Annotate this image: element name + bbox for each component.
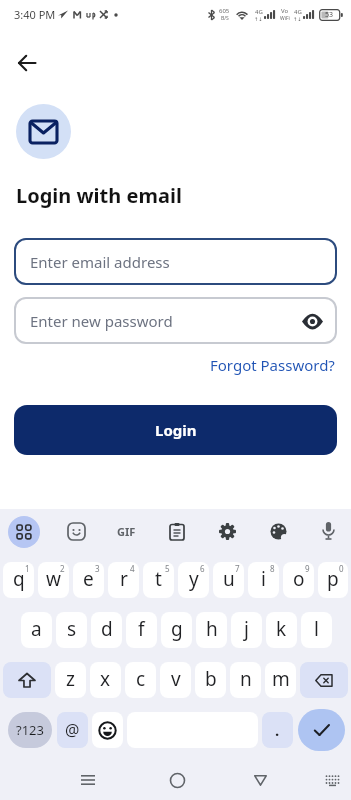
button[interactable] — [320, 768, 344, 792]
staticText: a — [31, 616, 42, 642]
button[interactable]: c — [125, 662, 156, 698]
staticText: f — [138, 616, 145, 642]
button[interactable] — [263, 516, 293, 546]
staticText: 9 — [305, 563, 310, 574]
staticText: d — [101, 616, 113, 642]
button[interactable]: g — [161, 612, 192, 648]
staticText: B/S — [221, 15, 229, 22]
button[interactable] — [248, 768, 272, 792]
button[interactable]: e — [73, 562, 104, 598]
staticText: 8 — [270, 563, 275, 574]
staticText: z — [66, 666, 75, 692]
staticText: 4 — [130, 563, 135, 574]
button[interactable]: t — [143, 562, 174, 598]
staticText: x — [100, 666, 111, 692]
staticText: o — [293, 566, 305, 592]
staticText: Login — [155, 420, 197, 440]
staticText: n — [240, 666, 252, 692]
button[interactable]: b — [195, 662, 226, 698]
button[interactable]: n — [230, 662, 261, 698]
button[interactable]: s — [56, 612, 87, 648]
staticText: u — [223, 566, 235, 592]
button[interactable]: y — [178, 562, 209, 598]
button[interactable]: u — [213, 562, 244, 598]
button[interactable] — [162, 516, 192, 546]
staticText: 6 — [200, 563, 205, 574]
staticText: h — [206, 616, 218, 642]
staticText: l — [314, 616, 319, 642]
button[interactable]: l — [301, 612, 332, 648]
staticText: Forgot Password? — [210, 355, 335, 375]
button[interactable]: d — [91, 612, 122, 648]
staticText: c — [136, 666, 146, 692]
button[interactable] — [3, 662, 51, 698]
staticText: 3 — [95, 563, 100, 574]
staticText: 4G — [255, 8, 263, 16]
button[interactable] — [212, 516, 242, 546]
button[interactable]: Enter new password — [14, 297, 337, 344]
button[interactable]: o — [283, 562, 314, 598]
button[interactable] — [298, 709, 345, 751]
button[interactable]: a — [21, 612, 52, 648]
button[interactable]: j — [231, 612, 262, 648]
button[interactable]: q — [3, 562, 34, 598]
button[interactable] — [313, 516, 343, 546]
staticText: Login with email — [16, 182, 182, 209]
button[interactable]: x — [90, 662, 121, 698]
button[interactable] — [300, 662, 348, 698]
button[interactable]: Login — [14, 405, 337, 455]
staticText: 1 — [25, 563, 30, 574]
button[interactable] — [92, 712, 123, 748]
staticText: 53 — [325, 10, 334, 20]
staticText: ↑↓ — [254, 16, 263, 22]
staticText: 7 — [235, 563, 240, 574]
button[interactable]: GIF — [111, 516, 141, 546]
button[interactable] — [14, 49, 42, 77]
staticText: . — [275, 720, 280, 740]
staticText: Enter email address — [30, 252, 170, 272]
button[interactable] — [300, 309, 324, 333]
button[interactable]: w — [38, 562, 69, 598]
staticText: e — [83, 566, 94, 592]
staticText: w — [46, 566, 61, 592]
button[interactable]: z — [55, 662, 86, 698]
staticText: @ — [65, 719, 80, 741]
staticText: 3:40 PM — [14, 7, 56, 22]
staticText: GIF — [117, 524, 136, 539]
staticText: p — [327, 566, 339, 592]
staticText: Enter new password — [30, 311, 173, 331]
staticText: ?123 — [16, 721, 44, 739]
button[interactable]: p — [318, 562, 348, 598]
staticText: 0 — [339, 563, 344, 574]
button[interactable] — [61, 516, 91, 546]
button[interactable]: ?123 — [8, 712, 52, 748]
button[interactable]: k — [266, 612, 297, 648]
staticText: q — [13, 566, 25, 592]
staticText: v — [171, 666, 181, 692]
button[interactable]: . — [262, 712, 293, 748]
button[interactable]: h — [196, 612, 227, 648]
staticText: k — [276, 616, 287, 642]
button[interactable] — [8, 516, 40, 548]
staticText: i — [261, 566, 266, 592]
staticText: j — [244, 616, 249, 642]
button[interactable] — [76, 768, 100, 792]
button[interactable]: Forgot Password? — [210, 355, 335, 375]
button[interactable]: Enter email address — [14, 238, 337, 285]
button[interactable]: m — [265, 662, 296, 698]
staticText: 4G — [294, 8, 302, 16]
staticText: ↑↓ — [293, 16, 302, 22]
staticText: WiFi — [280, 15, 290, 22]
button[interactable]: @ — [57, 712, 88, 748]
staticText: m — [272, 666, 290, 692]
button[interactable]: i — [248, 562, 279, 598]
staticText: g — [171, 616, 183, 642]
button[interactable]: v — [160, 662, 191, 698]
staticText: t — [155, 566, 162, 592]
button[interactable] — [165, 768, 189, 792]
button[interactable]: r — [108, 562, 139, 598]
button[interactable]: f — [126, 612, 157, 648]
staticText: Vo — [281, 7, 289, 15]
staticText: 2 — [60, 563, 65, 574]
